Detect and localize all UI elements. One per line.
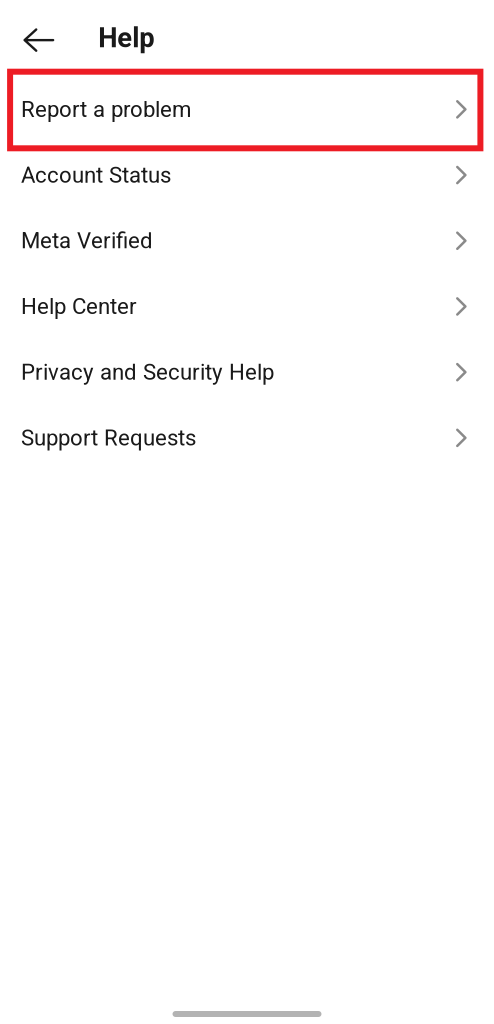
staticText: Account Status: [21, 162, 171, 188]
staticText: Report a problem: [21, 96, 191, 122]
staticText: Support Requests: [21, 425, 196, 451]
button[interactable]: Back: [0, 0, 98, 76]
staticText: Meta Verified: [21, 228, 153, 254]
button[interactable]: Support Requests: [0, 405, 494, 471]
staticText: Privacy and Security Help: [21, 359, 274, 385]
staticText: Help Center: [21, 293, 137, 319]
button[interactable]: Privacy and Security Help: [0, 339, 494, 405]
button[interactable]: Account Status: [0, 142, 494, 208]
staticText: Help: [98, 22, 154, 54]
button[interactable]: Meta Verified: [0, 208, 494, 274]
button[interactable]: Help Center: [0, 274, 494, 339]
button[interactable]: Report a problem: [0, 76, 494, 142]
